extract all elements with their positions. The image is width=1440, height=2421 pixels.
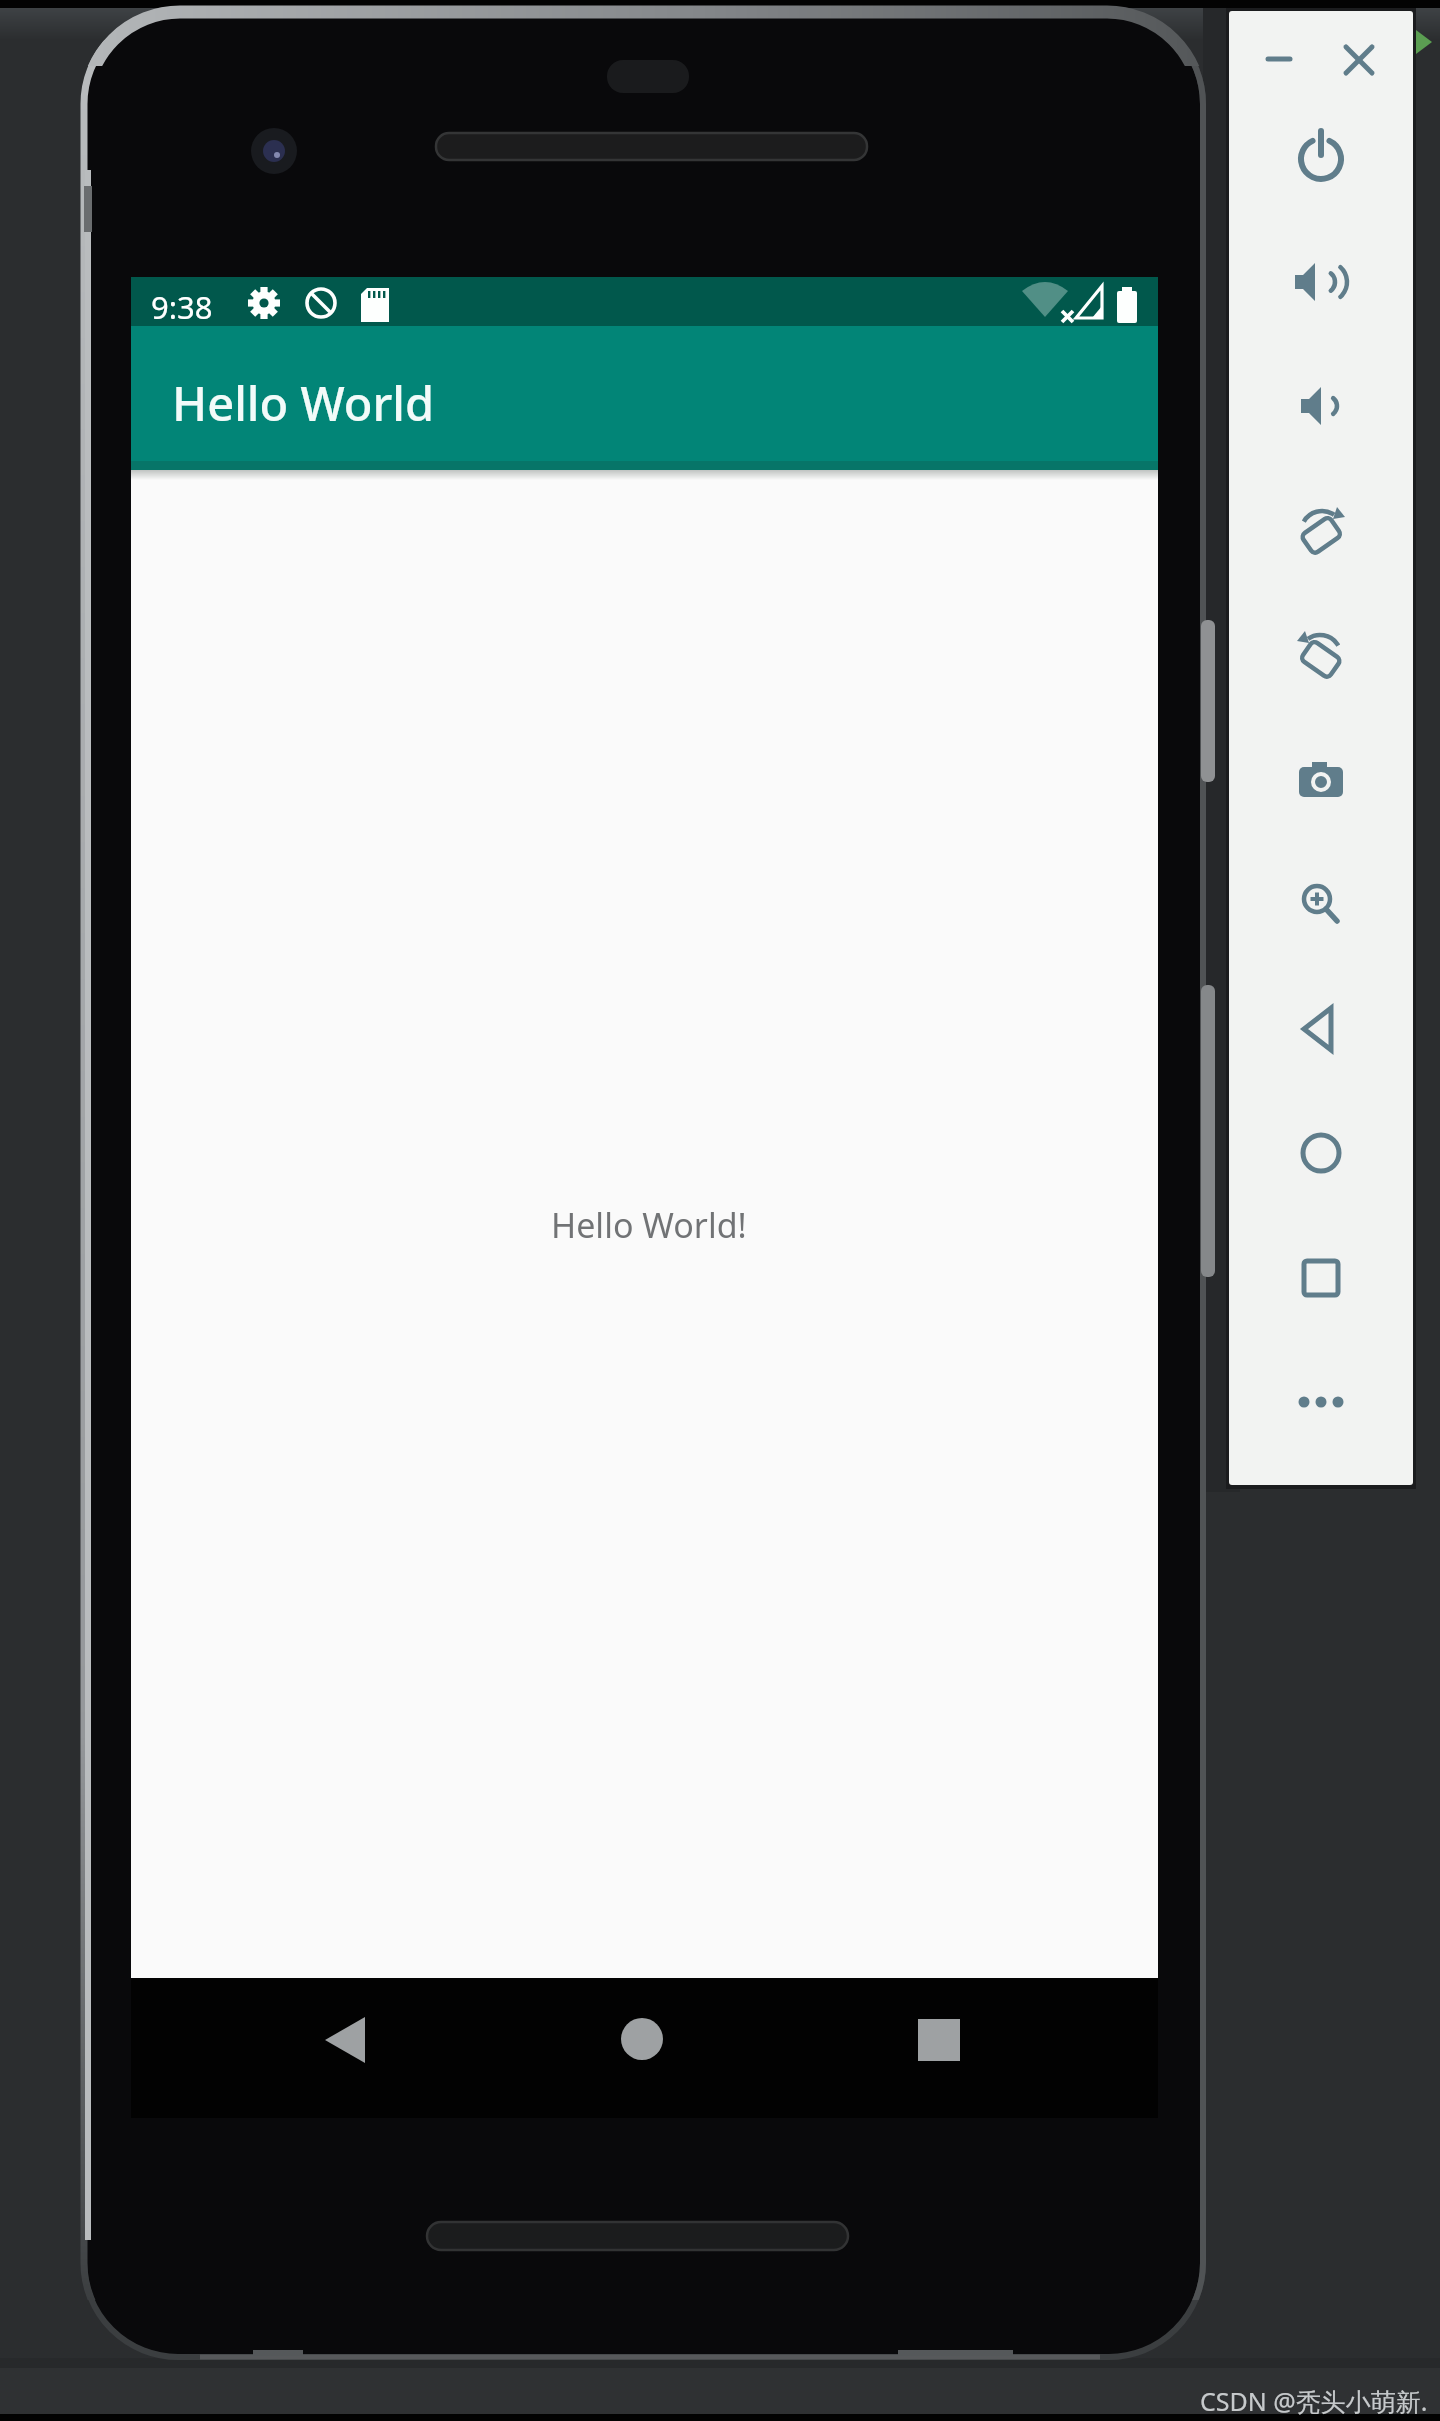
button[interactable] xyxy=(1293,1001,1349,1057)
button[interactable] xyxy=(1342,43,1376,77)
staticText: 9:38 xyxy=(151,286,213,328)
staticText: CSDN @秃头小萌新. xyxy=(1200,2384,1428,2418)
button[interactable] xyxy=(1293,627,1349,683)
button[interactable] xyxy=(1293,1250,1349,1306)
button[interactable] xyxy=(1293,752,1349,808)
button[interactable] xyxy=(1293,503,1349,559)
button[interactable] xyxy=(1293,254,1349,310)
button[interactable] xyxy=(1264,47,1300,83)
staticText: Hello World xyxy=(172,371,435,435)
button[interactable] xyxy=(1293,378,1349,434)
button[interactable] xyxy=(621,2018,663,2060)
button[interactable] xyxy=(325,2017,365,2063)
button[interactable] xyxy=(1293,1125,1349,1181)
button[interactable] xyxy=(1293,1374,1349,1430)
staticText: Hello World! xyxy=(551,1202,747,1248)
button[interactable] xyxy=(1293,876,1349,932)
button[interactable] xyxy=(1293,129,1349,185)
